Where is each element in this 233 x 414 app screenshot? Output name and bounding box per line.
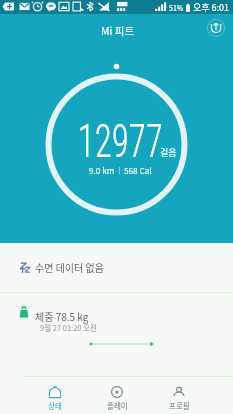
staticText: 12977 [78,113,163,168]
staticText: 상태 [48,400,62,411]
staticText: 9월 27 01:20 오전 [40,322,97,333]
staticText: 오후 6:01 [193,1,230,14]
button[interactable]: 수면 데이터 없음 [0,243,233,292]
staticText: 걸음 [160,146,177,159]
staticText: 수면 데이터 없음 [35,260,104,274]
staticText: 51% [169,3,184,13]
staticText: 568 Cal [124,164,152,176]
staticText: 9.0 km [89,164,115,176]
button[interactable]: 상태 [23,377,86,414]
button[interactable]: 플레이 [86,377,148,414]
staticText: Mi 피트 [101,23,135,38]
staticText: 플레이 [107,400,128,411]
staticText: 체중 78.5 kg [35,309,89,323]
button[interactable]: 체중 78.5 kg [0,293,233,376]
button[interactable]: 프로필 [148,377,210,414]
staticText: 프로필 [169,400,190,411]
button[interactable]: Sync [204,16,227,39]
